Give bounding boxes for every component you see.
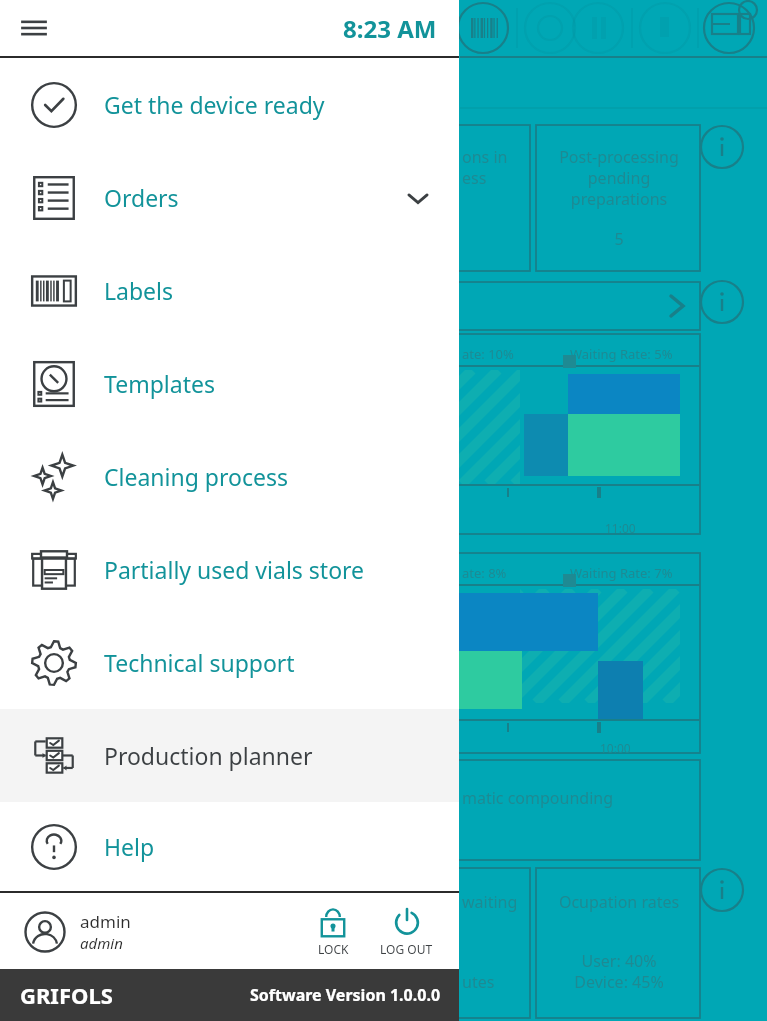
button[interactable]: admin — [24, 910, 131, 953]
staticText: User: 40% Device: 45% — [540, 950, 698, 993]
staticText: Cleaning process — [104, 461, 288, 492]
staticText: Orders — [104, 182, 179, 213]
staticText: ons in ess — [462, 146, 508, 189]
staticText: 8:23 AM — [343, 12, 437, 45]
staticText: ate: 10% — [462, 345, 514, 363]
staticText: Get the device ready — [104, 89, 325, 120]
staticText: Post-processing pending preparations — [540, 146, 698, 210]
button[interactable]: Cleaning process — [0, 430, 459, 523]
staticText: Waiting Rate: 7% — [570, 564, 673, 582]
button[interactable]: Get the device ready — [0, 58, 459, 151]
button[interactable]: LOG OUT — [376, 905, 437, 957]
button[interactable]: Menu — [10, 4, 58, 52]
staticText: utes — [462, 971, 495, 993]
staticText: Software Version 1.0.0.0 — [250, 984, 441, 1006]
button[interactable]: Labels — [0, 244, 459, 337]
staticText: Templates — [104, 368, 215, 399]
staticText: Help — [104, 831, 155, 862]
staticText: Partially used vials store — [104, 554, 365, 585]
staticText: LOCK — [318, 941, 349, 957]
button[interactable]: Production planner — [0, 709, 459, 802]
staticText: matic compounding — [462, 787, 613, 809]
staticText: Waiting Rate: 5% — [570, 345, 673, 363]
button[interactable]: Help — [0, 802, 459, 891]
button[interactable]: Orders — [0, 151, 459, 244]
staticText: Ocupation rates — [540, 891, 698, 913]
staticText: GRIFOLS — [20, 980, 113, 1010]
staticText: admin — [80, 933, 123, 953]
button[interactable]: LOCK — [312, 905, 354, 957]
staticText: ate: 8% — [462, 564, 507, 582]
button[interactable]: Templates — [0, 337, 459, 430]
staticText: 11:00 — [605, 520, 636, 536]
staticText: waiting — [462, 891, 518, 913]
staticText: Labels — [104, 275, 174, 306]
staticText: admin — [80, 910, 131, 933]
staticText: 10:00 — [600, 740, 631, 756]
staticText: Technical support — [104, 647, 295, 678]
staticText: LOG OUT — [380, 941, 433, 957]
staticText: Production planner — [104, 740, 313, 771]
button[interactable]: Partially used vials store — [0, 523, 459, 616]
button[interactable]: Technical support — [0, 616, 459, 709]
